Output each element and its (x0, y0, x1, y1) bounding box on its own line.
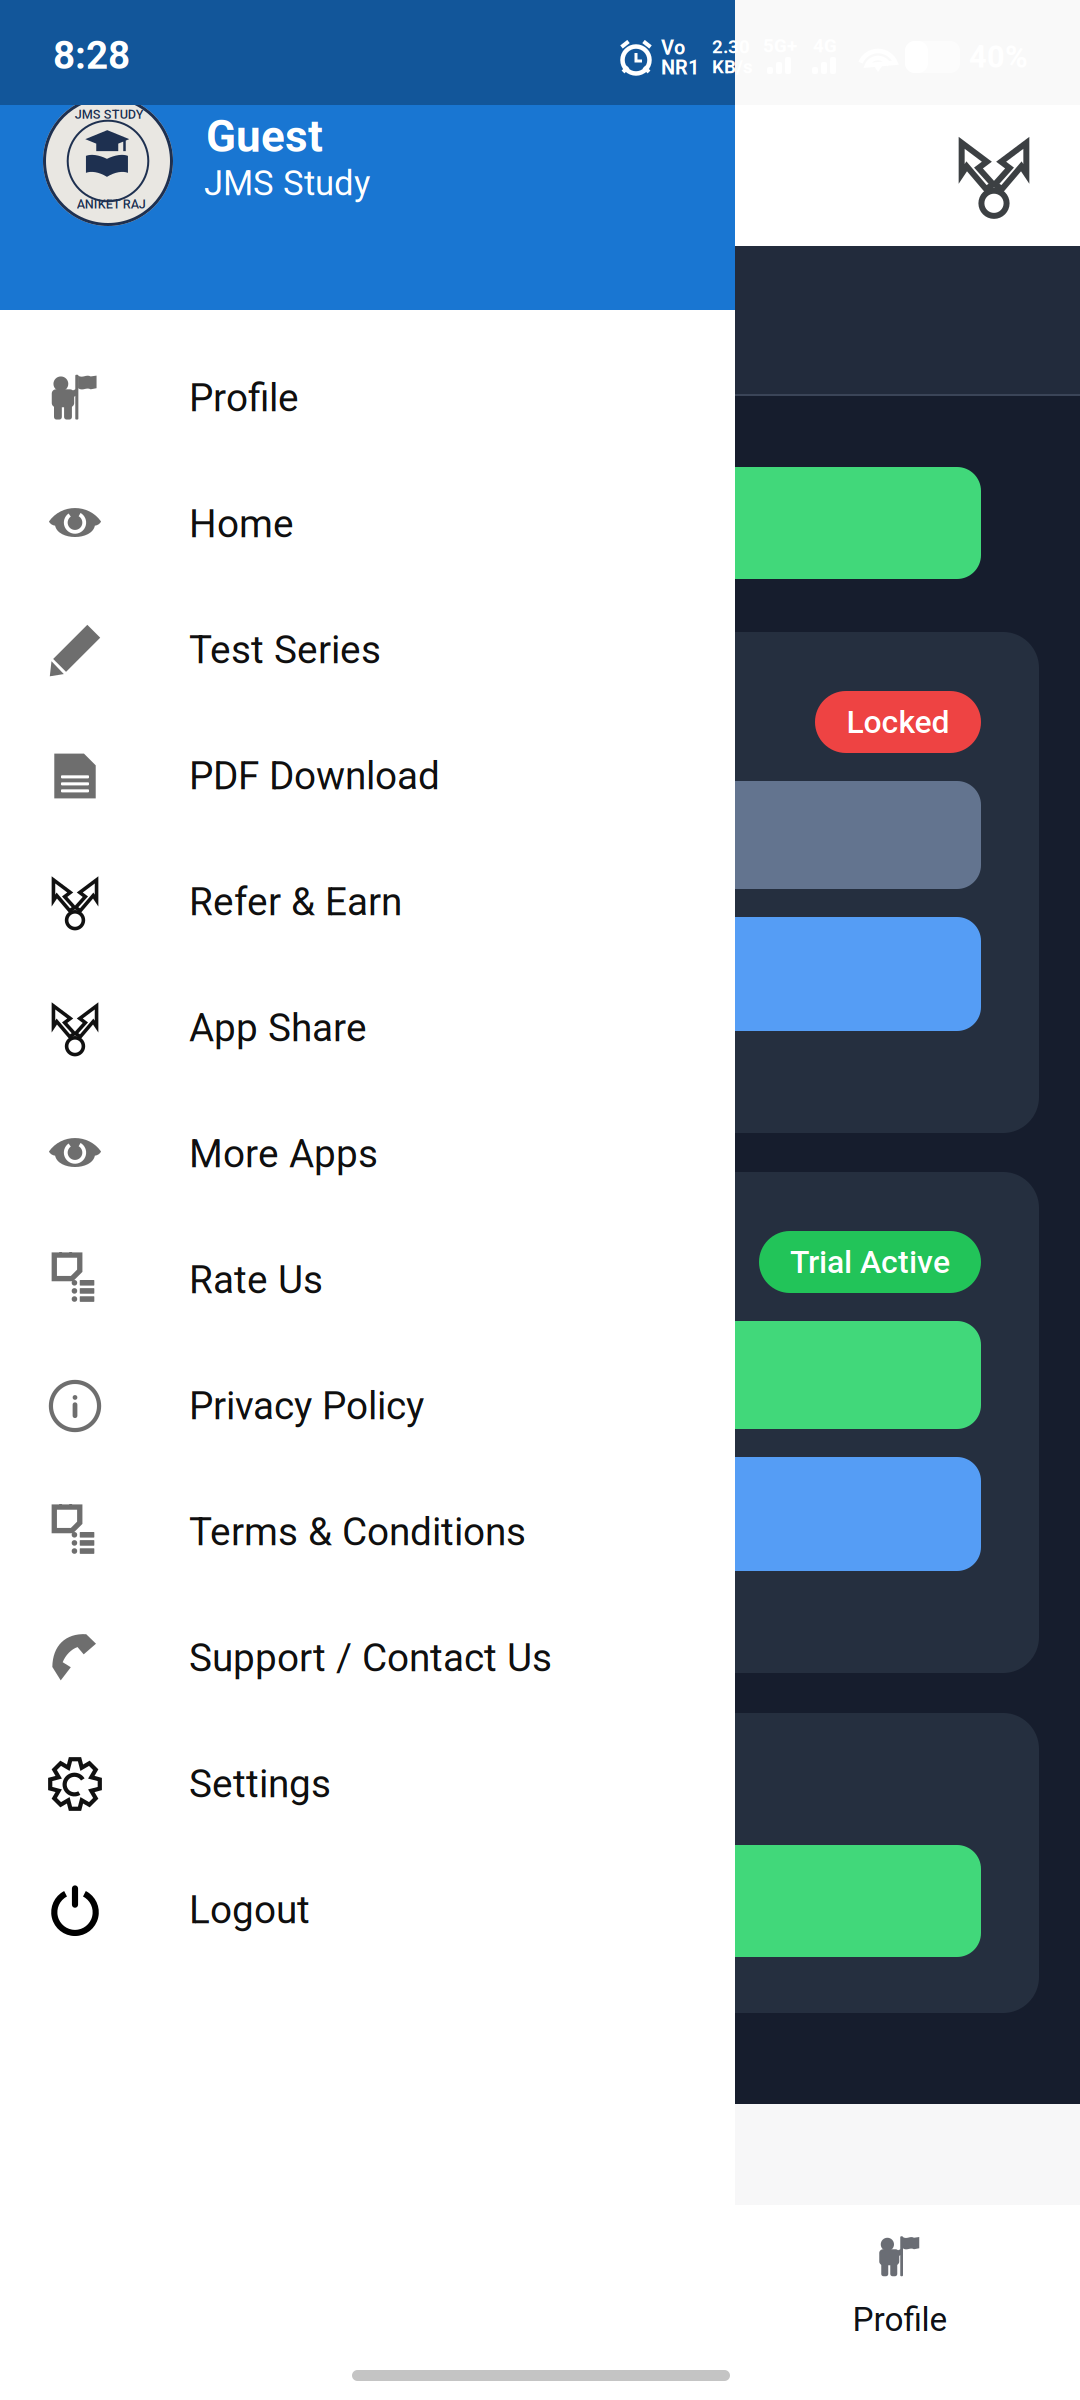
staticText: More Apps (189, 1131, 378, 1177)
staticText: Locked (846, 703, 949, 741)
staticText: JMS STUDY (75, 107, 144, 122)
staticText: App Share (189, 1005, 367, 1051)
staticText: ANIKET RAJ (77, 197, 146, 212)
button[interactable]: Profile (785, 2232, 1015, 2392)
staticText: Terms & Conditions (189, 1509, 526, 1555)
button[interactable]: Share app (936, 118, 1052, 234)
button[interactable]: Profile (0, 335, 735, 461)
staticText: Settings (189, 1761, 331, 1807)
staticText: 2.30 (712, 36, 750, 58)
staticText: 8:28 (53, 33, 130, 78)
button[interactable]: More Apps (0, 1091, 735, 1217)
staticText: Trial Active (790, 1243, 950, 1281)
staticText: Privacy Policy (189, 1383, 424, 1429)
button[interactable]: PDF Download (0, 713, 735, 839)
button[interactable]: Privacy Policy (0, 1343, 735, 1469)
button[interactable]: Settings (0, 1721, 735, 1847)
button[interactable]: Logout (0, 1847, 735, 1973)
staticText: KB/s (712, 56, 753, 78)
button[interactable]: App Share (0, 965, 735, 1091)
staticText: Profile (852, 2300, 947, 2339)
staticText: Vo (661, 36, 685, 59)
staticText: Profile (189, 375, 299, 421)
button[interactable]: Test Series (0, 587, 735, 713)
staticText: PDF Download (189, 753, 440, 799)
staticText: NR1 (661, 56, 699, 79)
button[interactable]: Terms & Conditions (0, 1469, 735, 1595)
button[interactable]: Support / Contact Us (0, 1595, 735, 1721)
staticText: Rate Us (189, 1257, 323, 1303)
staticText: Guest (206, 111, 323, 163)
staticText: Refer & Earn (189, 879, 402, 925)
staticText: Logout (189, 1887, 310, 1933)
button[interactable]: Rate Us (0, 1217, 735, 1343)
staticText: Home (189, 501, 294, 547)
button[interactable]: Refer & Earn (0, 839, 735, 965)
button[interactable]: Home (0, 461, 735, 587)
staticText: JMS Study (204, 163, 370, 204)
staticText: Test Series (189, 627, 381, 673)
staticText: Support / Contact Us (189, 1635, 552, 1681)
